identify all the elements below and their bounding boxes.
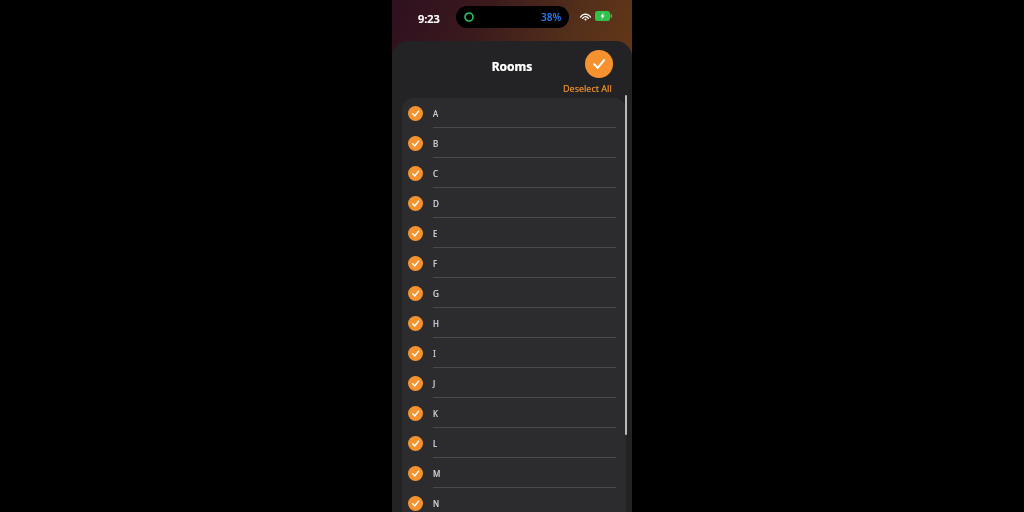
staticText: J [433,378,436,389]
button[interactable]: B [402,128,626,158]
staticText: 38% [541,10,562,24]
staticText: H [433,318,439,329]
staticText: Deselect All [563,82,612,94]
button[interactable]: M [402,458,626,488]
staticText: D [433,198,439,209]
staticText: M [433,468,441,479]
button[interactable]: E [402,218,626,248]
staticText: F [433,258,438,269]
staticText: A [433,108,439,119]
staticText: B [433,138,439,149]
staticText: L [433,438,438,449]
button[interactable]: F [402,248,626,278]
staticText: Rooms [392,58,632,74]
button[interactable]: J [402,368,626,398]
button[interactable]: H [402,308,626,338]
button[interactable]: Deselect All [552,81,612,95]
staticText: K [433,408,438,419]
button[interactable]: N [402,488,626,512]
staticText: E [433,228,438,239]
button[interactable]: C [402,158,626,188]
button[interactable]: D [402,188,626,218]
button[interactable]: G [402,278,626,308]
staticText: G [433,288,439,299]
button[interactable]: L [402,428,626,458]
staticText: N [433,498,440,509]
staticText: 9:23 [418,11,440,26]
button[interactable]: Confirm selection [585,50,613,78]
button[interactable]: I [402,338,626,368]
button[interactable]: K [402,398,626,428]
staticText: I [433,348,436,359]
button[interactable]: A [402,98,626,128]
staticText: C [433,168,439,179]
